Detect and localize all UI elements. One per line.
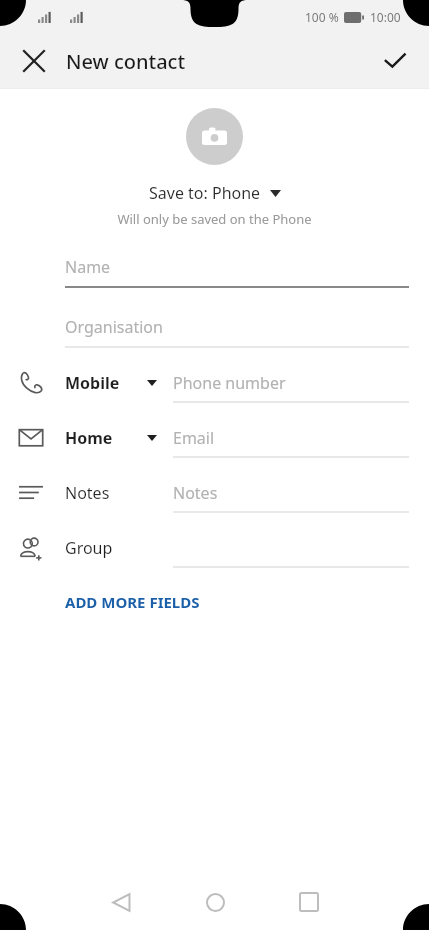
staticText: 100 % [305,9,339,25]
staticText: 10:00 [370,9,401,25]
button[interactable]: Save [373,39,417,83]
button[interactable]: Mobile [0,372,429,403]
staticText: Save to: Phone [149,182,261,204]
button[interactable]: Home [179,874,251,930]
staticText: ADD MORE FIELDS [65,592,200,612]
button[interactable]: Organisation [0,316,429,349]
staticText: Group [65,537,113,559]
staticText: Email [173,427,215,449]
button[interactable]: Notes [0,482,429,513]
button[interactable]: Close [12,39,56,83]
staticText: Phone number [173,372,286,394]
staticText: Name [65,256,111,278]
button[interactable]: Back [85,874,157,930]
button[interactable]: ADD MORE FIELDS [0,586,216,618]
staticText: Will only be saved on the Phone [117,210,312,228]
staticText: Home [65,427,113,449]
staticText: Notes [65,482,110,504]
button[interactable]: Recent apps [273,874,345,930]
button[interactable]: Home [0,427,429,458]
staticText: Mobile [65,372,120,394]
button[interactable]: Add photo [186,108,243,165]
staticText: New contact [66,48,186,75]
staticText: Notes [173,482,218,504]
button[interactable]: Save to: Phone [149,182,281,204]
button[interactable]: Group [0,537,429,568]
staticText: Organisation [65,316,163,338]
button[interactable]: Name [0,256,429,289]
